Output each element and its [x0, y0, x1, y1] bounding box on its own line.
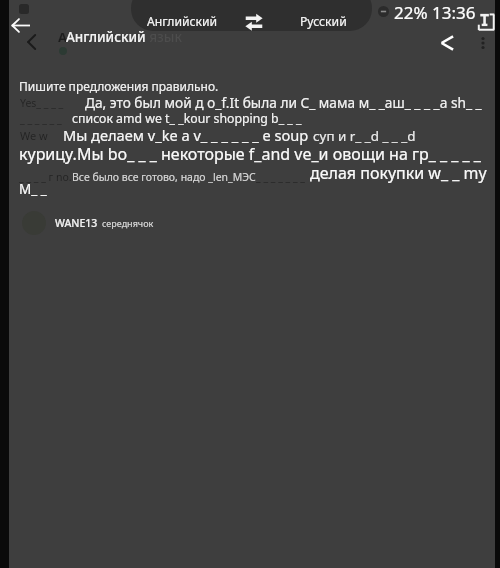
button[interactable]: Swap languages	[233, 12, 275, 31]
staticText: _ _ _ _ г no.	[19, 170, 72, 184]
button[interactable]: Back	[6, 11, 34, 39]
staticText: Yes_ _ _ _	[20, 96, 64, 110]
staticText: Да, это был мой д o_f.It была ли C_ мама…	[85, 93, 482, 112]
staticText: M_ _	[19, 180, 47, 198]
staticText: делая покупки w_ _ my	[310, 162, 487, 184]
button[interactable]: Share	[434, 30, 460, 56]
staticText: середнячок	[102, 217, 154, 229]
staticText: Пишите предложения правильно.	[19, 78, 219, 94]
staticText: курицу.Мы bo_ _ _ некоторые f_and ve_и о…	[19, 143, 481, 165]
staticText: Мы делаем v_ke a v_ _ _ _ _ _ e soup	[63, 125, 309, 145]
staticText: _ _ _ _ _ _	[20, 112, 62, 126]
staticText: Английский язык	[66, 28, 182, 46]
staticText: _ _ _ _ _ _ _	[256, 170, 306, 184]
staticText: Все было все готово, надо _len_МЭС	[72, 170, 256, 184]
staticText: список amd we t_ _kour shopping b_ _ _	[72, 110, 302, 127]
staticText: 22% 13:36	[394, 1, 476, 21]
staticText: Английский	[66, 28, 146, 46]
staticText: суп и r_ _d _ _ _d	[313, 127, 416, 145]
button[interactable]: WANE13	[9, 206, 495, 240]
button[interactable]: More options	[470, 30, 496, 56]
staticText: WANE13	[55, 216, 98, 230]
staticText: Английский	[147, 13, 218, 30]
button[interactable]: Select text	[475, 11, 497, 33]
button[interactable]: Navigate up	[17, 27, 46, 56]
staticText: Русский	[300, 13, 347, 30]
button[interactable]: Русский	[275, 12, 372, 31]
staticText: A	[58, 28, 67, 46]
button[interactable]: Английский	[131, 12, 233, 31]
staticText: We w	[20, 128, 48, 143]
